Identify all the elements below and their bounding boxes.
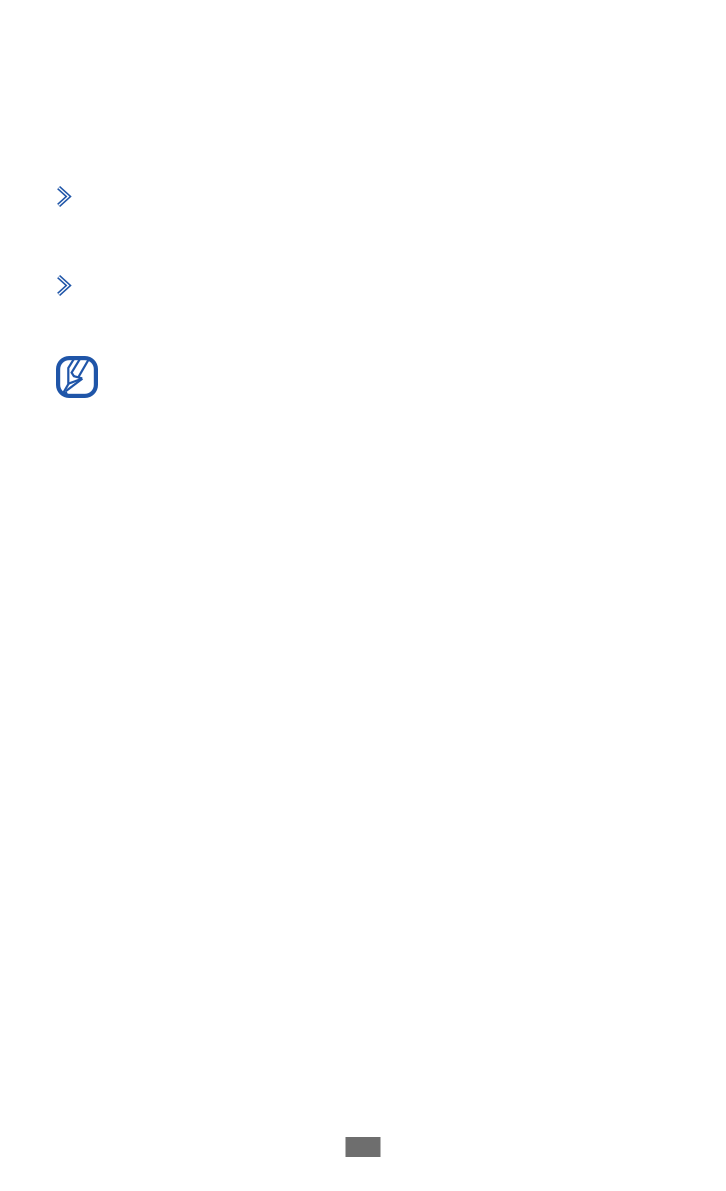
button[interactable]: Step [57, 275, 70, 296]
button[interactable]: Step [57, 186, 70, 207]
button[interactable]: Note [56, 356, 98, 398]
